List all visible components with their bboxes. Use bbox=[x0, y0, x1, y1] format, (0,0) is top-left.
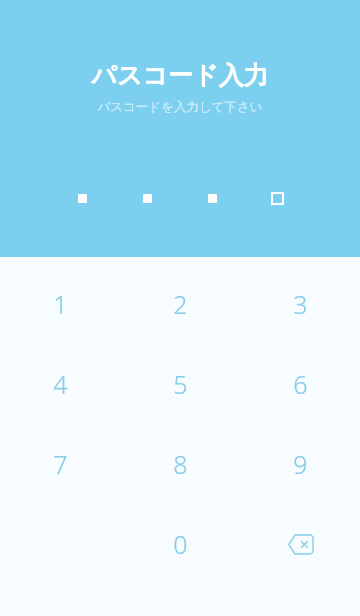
button[interactable]: 9 bbox=[240, 424, 360, 504]
staticText: 8 bbox=[173, 447, 188, 481]
button[interactable]: 2 bbox=[120, 264, 240, 344]
button[interactable]: 3 bbox=[240, 264, 360, 344]
button[interactable]: 0 bbox=[120, 504, 240, 584]
staticText: 2 bbox=[173, 287, 188, 321]
staticText: 9 bbox=[293, 447, 308, 481]
staticText: 0 bbox=[173, 527, 188, 561]
button[interactable]: 1 bbox=[0, 264, 120, 344]
staticText: パスコード入力 bbox=[91, 60, 269, 91]
staticText: 4 bbox=[53, 367, 68, 401]
staticText: 6 bbox=[293, 367, 308, 401]
staticText: 3 bbox=[293, 287, 308, 321]
staticText: 5 bbox=[173, 367, 188, 401]
button[interactable]: 6 bbox=[240, 344, 360, 424]
staticText: 1 bbox=[53, 287, 68, 321]
button[interactable]: 4 bbox=[0, 344, 120, 424]
staticText: パスコードを入力して下さい bbox=[97, 99, 263, 115]
button[interactable]: 8 bbox=[120, 424, 240, 504]
button[interactable]: 7 bbox=[0, 424, 120, 504]
staticText: 7 bbox=[53, 447, 68, 481]
button[interactable]: 5 bbox=[120, 344, 240, 424]
button[interactable]: Delete bbox=[240, 504, 360, 584]
